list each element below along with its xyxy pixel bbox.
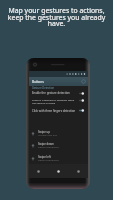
button[interactable]: Buttons [29,77,88,86]
staticText: Default behaviour [38,145,60,148]
button[interactable]: Swipe left [29,153,88,164]
staticText: There is a gesture to suppress while [32,98,75,101]
button[interactable]: There is a gesture to suppress while [29,97,88,105]
staticText: Swipe down [38,142,54,146]
staticText: Enable the gesture detection [32,91,70,95]
staticText: Swipe up [38,130,50,134]
button[interactable]: Click with three fingers detection [29,108,88,114]
button[interactable]: Toggle [79,99,84,102]
button[interactable]: Actions [48,164,68,178]
staticText: Default behaviour [38,158,60,161]
staticText: Already had this [38,133,57,136]
staticText: Gesture Detection [32,86,55,90]
staticText: the session is active [32,101,56,104]
button[interactable]: Toggle [79,109,84,112]
staticText: Buttons [32,80,44,84]
button[interactable]: Help [81,79,86,84]
staticText: Map your gestures to actions, keep the g… [4,6,109,28]
button[interactable]: Swipe up [29,128,88,139]
button[interactable]: Toggle [79,92,84,95]
button[interactable]: Gestures [29,164,48,178]
button[interactable]: Swipe down [29,140,88,151]
staticText: Swipe left [38,155,51,159]
staticText: Click with three fingers detection [32,109,76,113]
button[interactable]: Enable the gesture detection [29,90,88,96]
button[interactable]: Settings [68,164,88,178]
